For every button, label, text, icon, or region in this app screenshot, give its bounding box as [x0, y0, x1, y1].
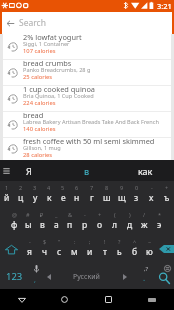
- button[interactable]: Backspace: [157, 235, 174, 262]
- staticText: ч: [42, 246, 48, 258]
- staticText: я: [27, 246, 32, 258]
- button[interactable]: -: [22, 235, 37, 262]
- button[interactable]: Русский: [55, 262, 118, 289]
- button[interactable]: -: [144, 181, 159, 208]
- staticText: Русский: [73, 272, 100, 282]
- button[interactable]: ": [52, 235, 67, 262]
- button[interactable]: !: [97, 235, 112, 262]
- button[interactable]: ,?: [136, 262, 154, 289]
- staticText: р: [82, 219, 88, 231]
- staticText: у: [33, 192, 38, 204]
- staticText: 4: [47, 184, 51, 191]
- button[interactable]: в: [58, 160, 116, 181]
- button[interactable]: Change keyboard: [130, 289, 174, 310]
- button[interactable]: Shift: [0, 235, 22, 262]
- staticText: с: [57, 246, 62, 258]
- button[interactable]: bread crumbs: [3, 60, 171, 85]
- staticText: ф: [11, 219, 18, 231]
- staticText: Я: [26, 165, 32, 177]
- staticText: ь: [117, 246, 122, 258]
- button[interactable]: 1 cup cooked quinoa: [3, 86, 171, 111]
- button[interactable]: 0: [129, 181, 144, 208]
- button[interactable]: :: [67, 235, 82, 262]
- button[interactable]: @: [7, 208, 21, 235]
- staticText: 8: [105, 184, 109, 191]
- button[interactable]: 6: [70, 181, 84, 208]
- staticText: к: [47, 192, 52, 204]
- button[interactable]: ~: [142, 235, 157, 262]
- button[interactable]: &: [63, 208, 77, 235]
- staticText: -: [151, 184, 153, 191]
- button[interactable]: 3: [28, 181, 42, 208]
- staticText: +: [98, 211, 102, 218]
- button[interactable]: Home: [43, 289, 86, 310]
- staticText: 1: [5, 184, 9, 191]
- staticText: й: [4, 192, 10, 204]
- button[interactable]: #: [21, 208, 35, 235]
- button[interactable]: Search: [154, 262, 174, 289]
- staticText: з: [134, 192, 139, 204]
- staticText: э: [157, 219, 162, 231]
- button[interactable]: Back: [0, 289, 43, 310]
- button[interactable]: Back: [2, 12, 172, 34]
- staticText: как: [138, 165, 153, 177]
- button[interactable]: как: [116, 160, 174, 181]
- staticText: п: [67, 219, 73, 231]
- button[interactable]: 7: [84, 181, 99, 208]
- button[interactable]: $: [37, 235, 52, 262]
- staticText: ъ: [164, 192, 170, 204]
- staticText: ш: [103, 192, 111, 204]
- staticText: 6: [75, 184, 79, 191]
- button[interactable]: ₽: [35, 208, 49, 235]
- staticText: Siggi, 1 Container: [23, 40, 70, 48]
- staticText: ): [129, 211, 131, 218]
- staticText: $: [43, 238, 47, 245]
- button[interactable]: /: [137, 208, 152, 235]
- staticText: 25 calories: [23, 73, 53, 81]
- staticText: -: [84, 211, 86, 218]
- button[interactable]: fresh coffee with 50 ml semi skimmed mil…: [3, 138, 171, 160]
- button[interactable]: bread: [3, 112, 171, 137]
- staticText: 224 calories: [23, 99, 56, 107]
- button[interactable]: ): [122, 208, 137, 235]
- button[interactable]: ;: [82, 235, 97, 262]
- staticText: bread crumbs: [23, 58, 72, 68]
- staticText: /: [143, 211, 146, 218]
- staticText: 2: [19, 184, 23, 191]
- staticText: г: [90, 192, 94, 204]
- staticText: ц: [18, 192, 24, 204]
- staticText: fresh coffee with 50 ml semi skimmed mil…: [23, 136, 168, 146]
- button[interactable]: 5: [56, 181, 70, 208]
- button[interactable]: *: [152, 208, 167, 235]
- button[interactable]: Back: [2, 12, 19, 34]
- staticText: 3:21: [157, 1, 172, 11]
- staticText: н: [74, 192, 80, 204]
- staticText: @: [12, 211, 17, 218]
- staticText: +: [165, 184, 169, 191]
- button[interactable]: Keyboard options: [0, 160, 13, 181]
- button[interactable]: -: [77, 208, 92, 235]
- button[interactable]: +: [92, 208, 107, 235]
- button[interactable]: 8: [99, 181, 114, 208]
- button[interactable]: 1: [0, 181, 14, 208]
- button[interactable]: (: [107, 208, 122, 235]
- button[interactable]: Voice input: [29, 262, 43, 289]
- button[interactable]: 9: [114, 181, 129, 208]
- staticText: _: [55, 211, 58, 218]
- button[interactable]: Recent apps: [86, 289, 130, 310]
- button[interactable]: ^: [127, 235, 142, 262]
- button[interactable]: Я: [0, 160, 58, 181]
- button[interactable]: _: [49, 208, 63, 235]
- staticText: ю: [146, 246, 153, 258]
- button[interactable]: Previous language: [43, 262, 55, 289]
- button[interactable]: 2: [14, 181, 28, 208]
- button[interactable]: +: [159, 181, 174, 208]
- button[interactable]: 2% lowfat yogurt: [3, 34, 171, 59]
- button[interactable]: ?: [112, 235, 127, 262]
- button[interactable]: 123: [0, 262, 29, 289]
- button[interactable]: Next language: [118, 262, 131, 289]
- staticText: :: [74, 238, 76, 245]
- button[interactable]: 4: [42, 181, 56, 208]
- button[interactable]: Emoji: [161, 262, 174, 275]
- staticText: х: [149, 192, 154, 204]
